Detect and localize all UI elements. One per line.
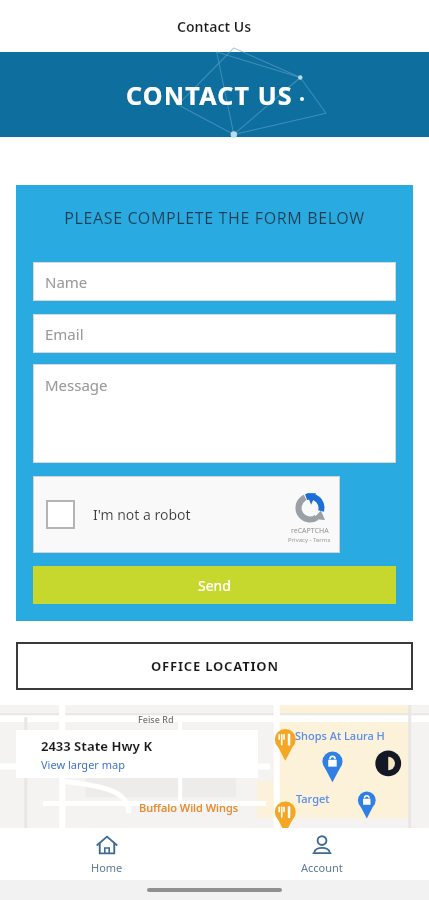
staticText: Feise Rd [24, 762, 60, 774]
staticText: Target [296, 791, 330, 806]
button[interactable]: Message [33, 364, 396, 463]
staticText: Home [91, 860, 123, 875]
button[interactable]: Name [33, 262, 396, 301]
staticText: Message [45, 375, 108, 395]
staticText: Email [45, 324, 84, 344]
button[interactable]: Email [33, 314, 396, 353]
staticText: Privacy - Terms [288, 536, 331, 544]
staticText: I'm not a robot [93, 505, 191, 524]
staticText: CONTACT US [126, 78, 293, 112]
button[interactable]: OFFICE LOCATION [16, 642, 413, 690]
staticText: Name [45, 272, 88, 292]
button[interactable]: Account [214, 828, 429, 880]
button[interactable]: 2433 State Hwy K [16, 730, 258, 778]
staticText: View larger map [41, 757, 125, 772]
staticText: Buffalo Wild Wings [139, 800, 239, 815]
staticText: reCAPTCHA [291, 526, 329, 536]
other: Home [96, 834, 118, 856]
staticText: Shops At Laura H [295, 728, 385, 743]
staticText: Send [198, 576, 231, 595]
other: Account [311, 834, 333, 856]
staticText: OFFICE LOCATION [151, 657, 279, 675]
button[interactable]: Home [0, 828, 214, 880]
staticText: Account [301, 860, 343, 875]
staticText: Feise Rd [138, 713, 174, 725]
staticText: PLEASE COMPLETE THE FORM BELOW [33, 207, 396, 229]
button[interactable]: I'm not a robot [33, 476, 340, 553]
button[interactable]: Send [33, 566, 396, 604]
staticText: 2433 State Hwy K [41, 737, 153, 755]
staticText: Contact Us [177, 17, 252, 36]
